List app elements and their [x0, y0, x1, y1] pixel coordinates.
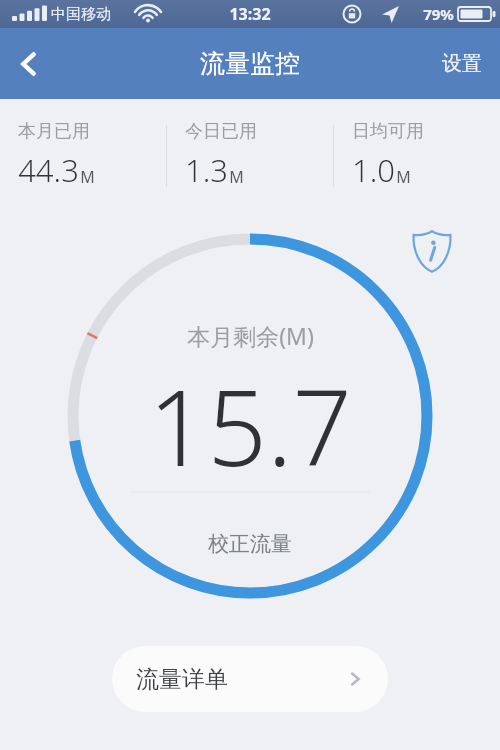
staticText: 本月已用: [18, 120, 90, 143]
button[interactable]: 设置: [424, 28, 500, 99]
staticText: 13:32: [229, 3, 271, 25]
staticText: 校正流量: [208, 531, 292, 557]
staticText: 44.3: [18, 149, 79, 191]
button[interactable]: 流量详单: [112, 646, 388, 712]
staticText: 流量监控: [200, 48, 300, 79]
staticText: 1.3: [185, 149, 228, 191]
staticText: 中国移动: [51, 5, 111, 24]
staticText: 本月剩余(M): [187, 320, 314, 351]
staticText: 79%: [423, 4, 454, 24]
staticText: M: [229, 166, 244, 188]
staticText: M: [396, 166, 411, 188]
button[interactable]: 校正流量: [194, 526, 306, 562]
staticText: 今日已用: [185, 120, 257, 143]
button[interactable]: Information: [409, 228, 455, 274]
staticText: 1.0: [352, 149, 395, 191]
staticText: 日均可用: [352, 120, 424, 143]
button[interactable]: Back: [0, 35, 58, 93]
staticText: M: [80, 166, 95, 188]
staticText: 15.7: [148, 355, 352, 497]
staticText: 设置: [442, 51, 482, 76]
staticText: 流量详单: [136, 665, 228, 694]
